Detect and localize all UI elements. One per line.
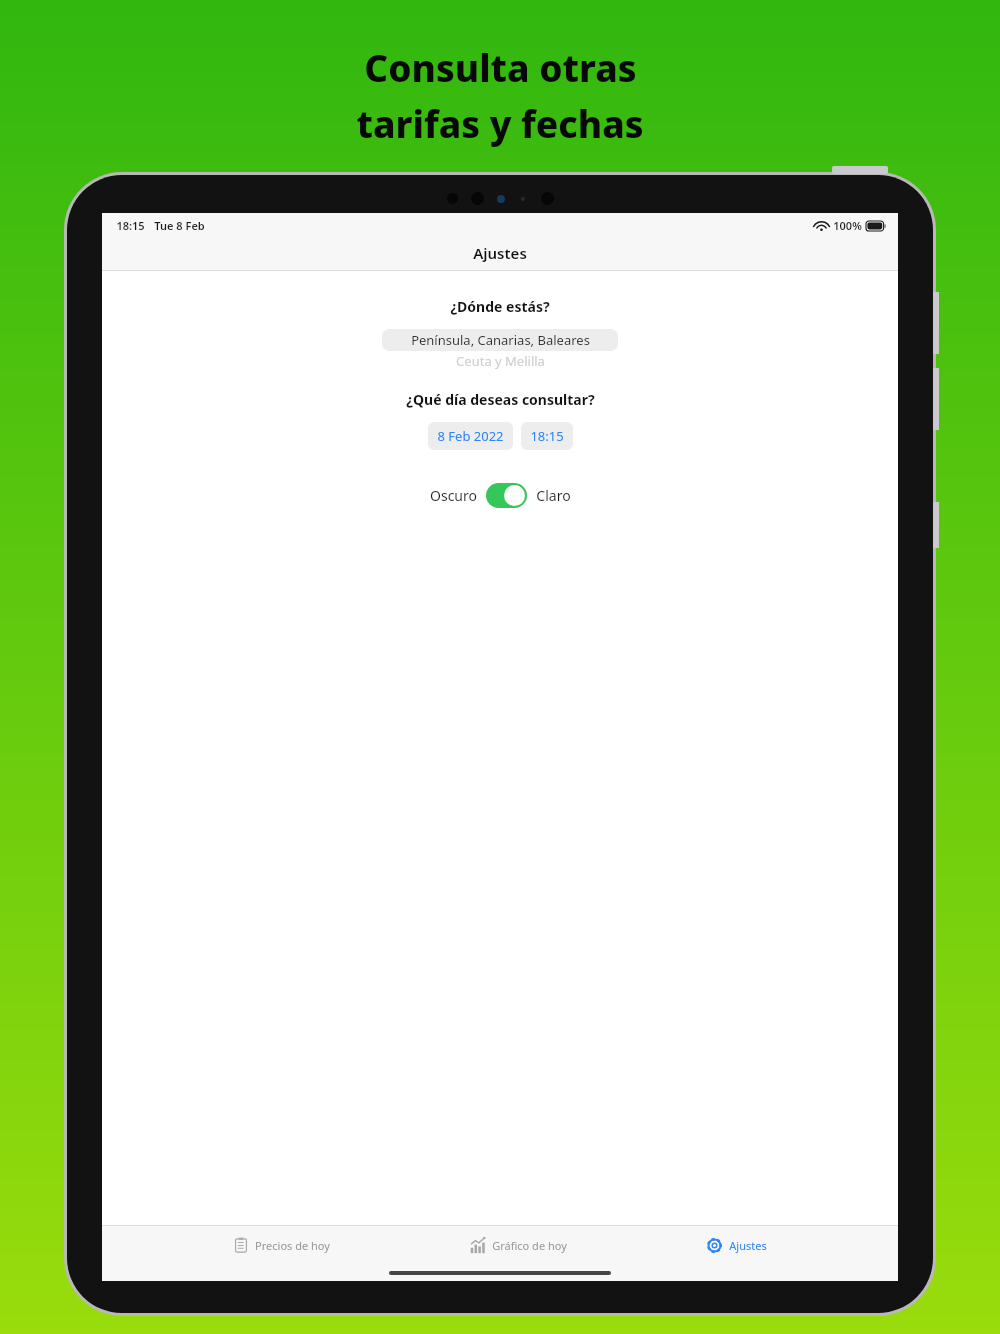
button[interactable]: Gráfico de hoy (461, 1232, 575, 1259)
staticText: Península, Canarias, Baleares (411, 331, 590, 349)
staticText: Claro (536, 486, 571, 505)
staticText: ¿Dónde estás? (450, 297, 550, 316)
other: Ajustes (706, 1237, 723, 1254)
staticText: 100% (833, 218, 862, 233)
button[interactable]: Ajustes (698, 1232, 775, 1259)
staticText: 8 Feb 2022 (437, 427, 504, 445)
button[interactable]: 8 Feb 2022 (428, 422, 513, 450)
staticText: Ajustes (473, 243, 527, 263)
button[interactable]: Precios de hoy (225, 1232, 338, 1258)
staticText: Consulta otras (364, 42, 637, 92)
button[interactable]: 18:15 (521, 422, 573, 450)
staticText: 18:15 (530, 427, 564, 445)
button[interactable]: Península, Canarias, Baleares (382, 329, 618, 361)
staticText: Ajustes (729, 1238, 767, 1253)
staticText: Oscuro (430, 486, 477, 505)
staticText: 18:15 (116, 218, 145, 233)
staticText: Tue 8 Feb (154, 218, 205, 233)
button[interactable]: Tema claro u oscuro (486, 483, 527, 508)
staticText: ¿Qué día deseas consultar? (406, 390, 595, 409)
staticText: Gráfico de hoy (492, 1238, 567, 1253)
staticText: Precios de hoy (255, 1238, 330, 1253)
staticText: Ceuta y Melilla (456, 352, 545, 370)
staticText: tarifas y fechas (356, 98, 644, 148)
